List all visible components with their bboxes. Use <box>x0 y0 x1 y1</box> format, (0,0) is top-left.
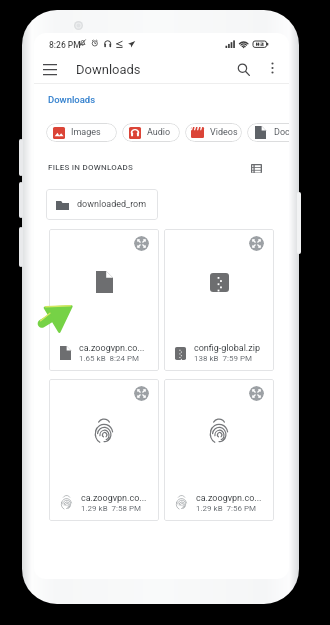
staticText: 1.29 kB 7:58 PM <box>81 504 142 513</box>
button[interactable]: Documents <box>247 123 289 142</box>
staticText: downloaded_rom <box>77 199 147 210</box>
button[interactable]: Select item <box>134 386 149 401</box>
button[interactable]: downloaded_rom <box>46 189 158 220</box>
staticText: Downloads <box>76 62 141 77</box>
staticText: ca.zoogvpn.co... <box>81 493 147 504</box>
staticText: Audio <box>147 127 171 138</box>
button[interactable]: Select item <box>249 236 264 251</box>
staticText: 8:26 PM <box>49 40 81 50</box>
button[interactable]: Search <box>230 56 256 82</box>
staticText: 138 kB 7:59 PM <box>194 354 252 363</box>
button[interactable]: Open navigation menu <box>38 57 62 81</box>
button[interactable]: Images <box>46 123 117 142</box>
button[interactable]: Select item <box>164 229 274 371</box>
staticText: 1.65 kB 8:24 PM <box>79 354 140 363</box>
staticText: Downloads <box>48 94 96 105</box>
button[interactable]: Select item <box>134 236 149 251</box>
button[interactable]: Select item <box>49 379 159 521</box>
button[interactable]: More options <box>260 56 284 80</box>
button[interactable]: Downloads <box>42 88 102 110</box>
button[interactable]: Select item <box>249 386 264 401</box>
staticText: ca.zoogvpn.co... <box>196 493 262 504</box>
staticText: config-global.zip <box>194 343 260 354</box>
staticText: Images <box>71 127 101 138</box>
staticText: Videos <box>210 127 238 138</box>
button[interactable]: Videos <box>185 123 242 142</box>
staticText: ca.zoogvpn.co... <box>79 343 145 354</box>
button[interactable]: Switch to list view <box>245 157 267 179</box>
button[interactable]: Select item <box>49 229 159 371</box>
button[interactable]: Select item <box>164 379 274 521</box>
staticText: FILES IN DOWNLOADS <box>48 163 134 172</box>
staticText: 1.29 kB 7:56 PM <box>196 504 257 513</box>
staticText: Documents <box>274 127 289 138</box>
button[interactable]: Audio <box>122 123 180 142</box>
